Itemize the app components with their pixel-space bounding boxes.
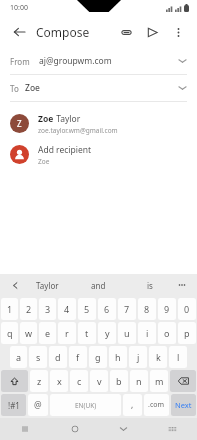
- button[interactable]: l: [169, 346, 187, 368]
- button[interactable]: b: [110, 370, 128, 392]
- staticText: o: [164, 327, 170, 339]
- button[interactable]: 1: [1, 298, 18, 320]
- staticText: Zoe: [25, 82, 40, 94]
- staticText: q: [7, 327, 13, 339]
- staticText: x: [57, 375, 62, 387]
- staticText: 8: [144, 303, 150, 315]
- button[interactable]: p: [178, 322, 196, 344]
- button[interactable]: To: [0, 75, 197, 102]
- button[interactable]: and: [73, 280, 124, 291]
- button[interactable]: 3: [39, 298, 56, 320]
- button[interactable]: From: [0, 48, 197, 75]
- button[interactable]: Previous suggestions: [8, 278, 22, 292]
- button[interactable]: g: [89, 346, 107, 368]
- staticText: 6: [104, 303, 110, 315]
- staticText: Zoe: [38, 157, 50, 166]
- staticText: a: [16, 351, 22, 363]
- button[interactable]: x: [50, 370, 68, 392]
- button[interactable]: 6: [98, 298, 116, 320]
- button[interactable]: Shift: [1, 370, 28, 392]
- button[interactable]: m: [150, 370, 168, 392]
- staticText: zoe.taylor.wm@gmail.com: [38, 126, 118, 135]
- staticText: @: [34, 399, 42, 411]
- button[interactable]: i: [138, 322, 156, 344]
- staticText: y: [105, 327, 110, 339]
- button[interactable]: Backspace: [170, 370, 196, 392]
- staticText: EN(UK): [75, 401, 97, 410]
- staticText: Zoe: [38, 113, 54, 125]
- button[interactable]: 5: [78, 298, 96, 320]
- button[interactable]: d: [49, 346, 67, 368]
- staticText: and: [91, 280, 106, 291]
- button[interactable]: More suggestions: [175, 278, 189, 292]
- staticText: Taylor: [54, 113, 81, 125]
- button[interactable]: o: [158, 322, 176, 344]
- staticText: k: [156, 351, 161, 363]
- button[interactable]: Attach: [115, 21, 137, 43]
- staticText: r: [65, 327, 69, 339]
- button[interactable]: 9: [158, 298, 176, 320]
- button[interactable]: k: [149, 346, 167, 368]
- staticText: u: [124, 327, 130, 339]
- button[interactable]: s: [29, 346, 47, 368]
- staticText: 0: [184, 303, 190, 315]
- button[interactable]: w: [20, 322, 37, 344]
- button[interactable]: 4: [58, 298, 76, 320]
- button[interactable]: is: [124, 280, 175, 291]
- button[interactable]: Next: [171, 394, 196, 416]
- button[interactable]: Z: [0, 108, 197, 139]
- staticText: Taylor: [36, 280, 59, 291]
- button[interactable]: r: [58, 322, 76, 344]
- staticText: .com: [148, 400, 165, 410]
- staticText: aj@groupwm.com: [39, 55, 112, 67]
- button[interactable]: Hide keyboard: [99, 418, 148, 440]
- button[interactable]: ,: [123, 394, 142, 416]
- button[interactable]: Keyboard layout: [148, 418, 197, 440]
- button[interactable]: 2: [20, 298, 37, 320]
- button[interactable]: c: [70, 370, 88, 392]
- staticText: d: [55, 351, 61, 363]
- button[interactable]: h: [109, 346, 127, 368]
- staticText: From: [10, 56, 30, 67]
- button[interactable]: .com: [144, 394, 169, 416]
- staticText: 4: [64, 303, 70, 315]
- button[interactable]: 8: [138, 298, 156, 320]
- staticText: i: [146, 327, 149, 339]
- button[interactable]: e: [39, 322, 56, 344]
- staticText: 9: [164, 303, 170, 315]
- staticText: v: [97, 375, 102, 387]
- staticText: w: [25, 327, 33, 339]
- button[interactable]: Taylor: [22, 280, 73, 291]
- staticText: Compose: [36, 24, 90, 40]
- button[interactable]: More options: [167, 21, 189, 43]
- button[interactable]: q: [1, 322, 18, 344]
- button[interactable]: 7: [118, 298, 136, 320]
- staticText: p: [184, 327, 190, 339]
- button[interactable]: t: [78, 322, 96, 344]
- button[interactable]: z: [30, 370, 48, 392]
- staticText: 7: [124, 303, 130, 315]
- button[interactable]: Send: [141, 21, 163, 43]
- button[interactable]: Space: [50, 394, 121, 416]
- staticText: j: [137, 351, 140, 363]
- button[interactable]: a: [10, 346, 27, 368]
- button[interactable]: f: [69, 346, 87, 368]
- button[interactable]: Add recipient: [0, 139, 197, 170]
- staticText: 10:00: [10, 3, 28, 13]
- button[interactable]: y: [98, 322, 116, 344]
- button[interactable]: Recents: [0, 418, 50, 440]
- button[interactable]: !#1: [1, 394, 26, 416]
- button[interactable]: Back: [8, 21, 30, 43]
- button[interactable]: Home: [50, 418, 99, 440]
- staticText: !#1: [8, 400, 20, 411]
- button[interactable]: @: [28, 394, 48, 416]
- staticText: f: [76, 351, 80, 363]
- button[interactable]: j: [129, 346, 147, 368]
- staticText: e: [45, 327, 51, 339]
- staticText: g: [95, 351, 101, 363]
- button[interactable]: n: [130, 370, 148, 392]
- button[interactable]: 0: [178, 298, 196, 320]
- button[interactable]: u: [118, 322, 136, 344]
- button[interactable]: v: [90, 370, 108, 392]
- staticText: 3: [45, 303, 51, 315]
